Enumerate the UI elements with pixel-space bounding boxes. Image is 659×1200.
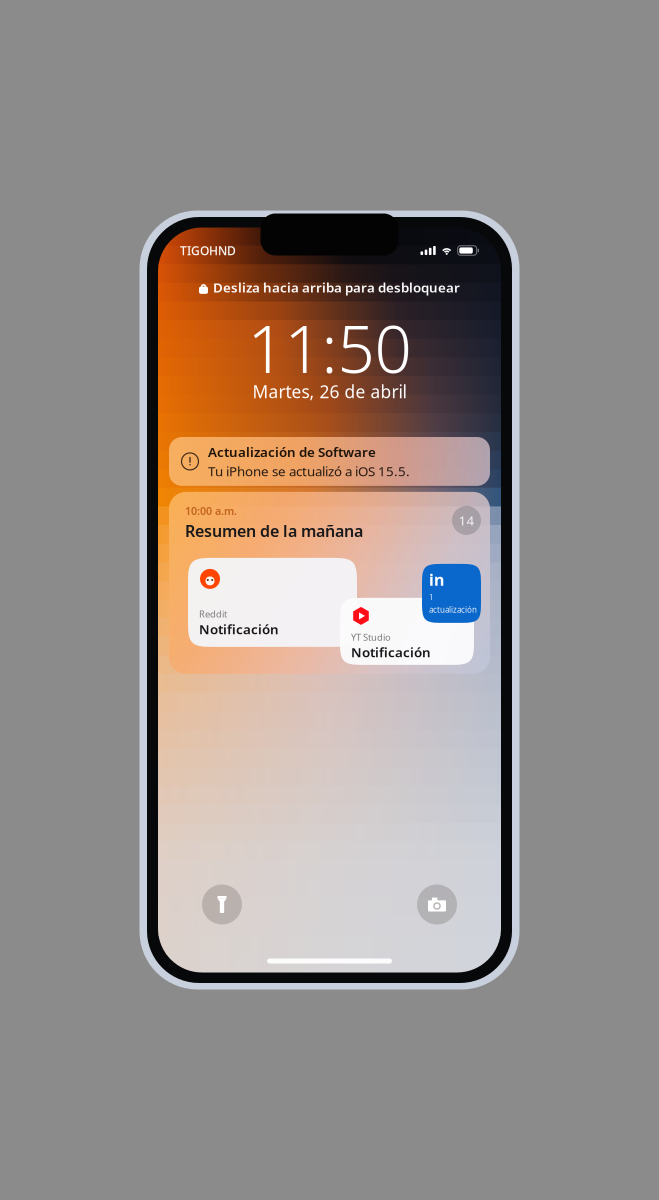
staticText: 10:00 a.m. bbox=[185, 504, 237, 518]
button[interactable]: 10:00 a.m. bbox=[169, 492, 490, 674]
staticText: Reddit bbox=[199, 608, 227, 620]
staticText: Tu iPhone se actualizó a iOS 15.5. bbox=[208, 462, 410, 480]
button[interactable]: Actualización de Software bbox=[169, 437, 490, 486]
staticText: Actualización de Software bbox=[208, 443, 376, 461]
button[interactable]: Linterna bbox=[202, 884, 242, 924]
staticText: Notificación bbox=[351, 643, 431, 661]
button[interactable]: Cámara bbox=[417, 884, 457, 924]
staticText: Desliza hacia arriba para desbloquear bbox=[213, 278, 460, 296]
staticText: 14 bbox=[458, 511, 474, 529]
staticText: Martes, 26 de abril bbox=[252, 380, 406, 403]
staticText: actualización bbox=[429, 604, 477, 615]
staticText: in bbox=[429, 569, 444, 590]
staticText: Notificación bbox=[199, 620, 279, 638]
staticText: YT Studio bbox=[351, 631, 391, 643]
staticText: TIGOHND bbox=[180, 242, 236, 258]
staticText: 11:50 bbox=[247, 304, 411, 391]
staticText: 1 bbox=[429, 592, 434, 602]
staticText: Resumen de la mañana bbox=[185, 520, 363, 541]
